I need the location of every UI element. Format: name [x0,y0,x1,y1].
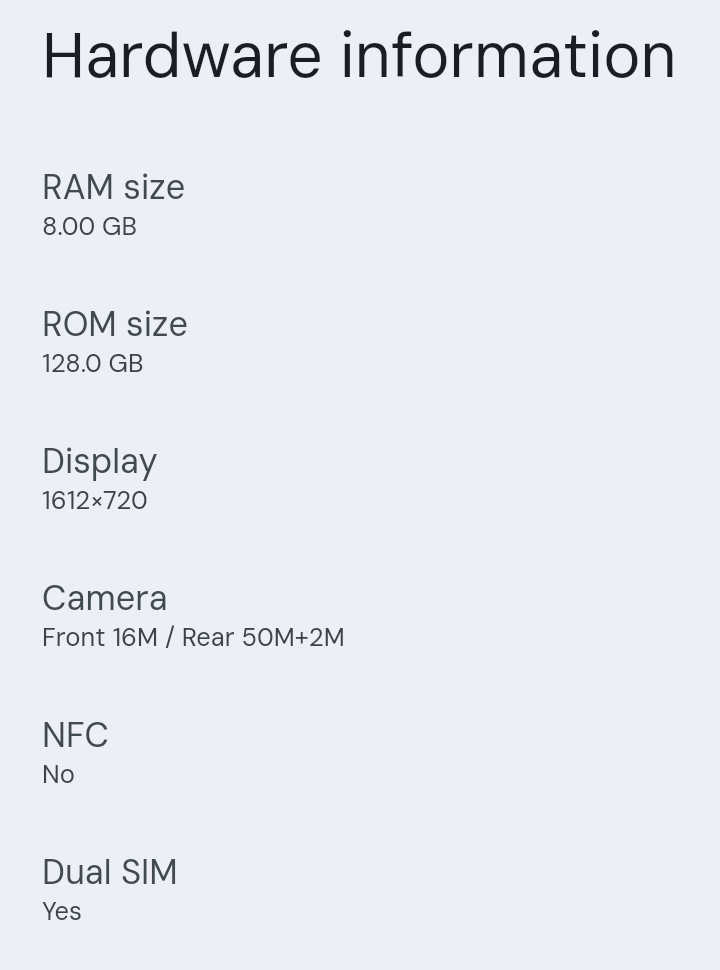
staticText: Camera [42,576,168,621]
button[interactable]: Display [0,421,720,525]
staticText: Display [42,439,158,484]
button[interactable]: Camera [0,558,720,662]
button[interactable]: Dual SIM [0,832,720,936]
button[interactable]: ROM size [0,284,720,388]
staticText: No [42,758,75,791]
staticText: RAM size [42,165,186,210]
button[interactable]: RAM size [0,147,720,251]
staticText: 1612×720 [42,484,148,517]
staticText: 8.00 GB [42,210,137,243]
staticText: Front 16M / Rear 50M+2M [42,621,345,654]
staticText: Yes [42,895,83,928]
staticText: Hardware information [42,15,677,97]
staticText: Dual SIM [42,850,178,895]
button[interactable]: NFC [0,695,720,799]
staticText: NFC [42,713,110,758]
staticText: 128.0 GB [42,347,144,380]
staticText: ROM size [42,302,188,347]
